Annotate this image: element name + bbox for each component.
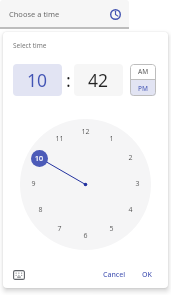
- button[interactable]: OK: [134, 267, 159, 283]
- button[interactable]: AM: [130, 64, 156, 79]
- staticText: 7: [57, 224, 62, 234]
- staticText: 12: [81, 127, 90, 137]
- staticText: 3: [135, 179, 140, 189]
- button[interactable]: 10: [13, 64, 62, 96]
- staticText: 2: [128, 153, 133, 163]
- button[interactable]: 42: [74, 64, 123, 96]
- staticText: :: [66, 68, 71, 93]
- staticText: Choose a time: [9, 9, 60, 19]
- staticText: 1: [109, 134, 114, 144]
- staticText: PM: [138, 84, 148, 93]
- button[interactable]: 10: [31, 150, 48, 167]
- staticText: 42: [88, 68, 109, 92]
- button[interactable]: PM: [130, 80, 156, 96]
- staticText: Select time: [13, 41, 47, 50]
- button[interactable]: Cancel: [97, 267, 131, 283]
- staticText: AM: [138, 67, 149, 76]
- staticText: 10: [27, 68, 48, 92]
- staticText: Cancel: [103, 270, 126, 280]
- staticText: 5: [109, 224, 114, 234]
- staticText: 10: [36, 153, 45, 163]
- staticText: 10: [35, 154, 44, 164]
- staticText: 9: [31, 179, 36, 189]
- staticText: 4: [128, 205, 133, 215]
- staticText: 11: [55, 134, 64, 144]
- staticText: 8: [38, 205, 43, 215]
- staticText: 6: [83, 231, 88, 241]
- button[interactable]: [9, 265, 29, 285]
- staticText: OK: [142, 270, 152, 280]
- button[interactable]: Choose a time: [0, 0, 129, 28]
